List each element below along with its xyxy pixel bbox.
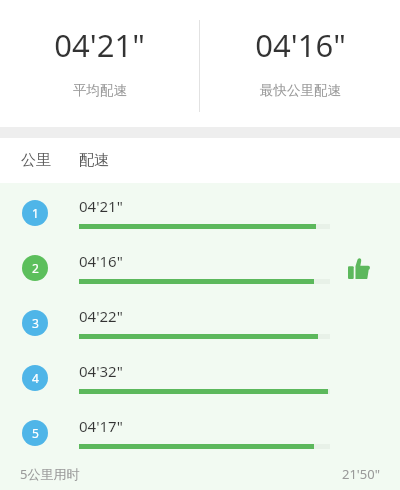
button[interactable]: 04'21" <box>0 0 199 127</box>
button[interactable]: 3 <box>0 297 400 348</box>
staticText: 1 <box>32 205 39 221</box>
staticText: 2 <box>32 260 39 276</box>
button[interactable]: 4 <box>0 352 400 403</box>
staticText: 04'21" <box>54 24 145 66</box>
staticText: 5公里用时 <box>20 465 80 483</box>
staticText: 平均配速 <box>73 82 127 99</box>
staticText: 04'32" <box>79 361 123 381</box>
staticText: 公里 <box>21 151 51 170</box>
staticText: 最快公里配速 <box>260 82 341 99</box>
staticText: 5 <box>32 425 39 441</box>
staticText: 配速 <box>79 151 109 170</box>
staticText: 04'17" <box>79 416 123 436</box>
staticText: 4 <box>32 370 39 386</box>
staticText: 3 <box>32 315 39 331</box>
staticText: 04'21" <box>79 196 123 216</box>
staticText: 21'50" <box>342 465 380 483</box>
staticText: 04'16" <box>79 251 123 271</box>
button[interactable]: 04'16" <box>200 0 400 127</box>
button[interactable]: 5 <box>0 407 400 458</box>
staticText: 04'22" <box>79 306 123 326</box>
button[interactable]: 1 <box>0 187 400 238</box>
button[interactable]: Best lap <box>348 257 370 279</box>
staticText: 04'16" <box>255 24 346 66</box>
button[interactable]: 2 <box>0 242 400 293</box>
